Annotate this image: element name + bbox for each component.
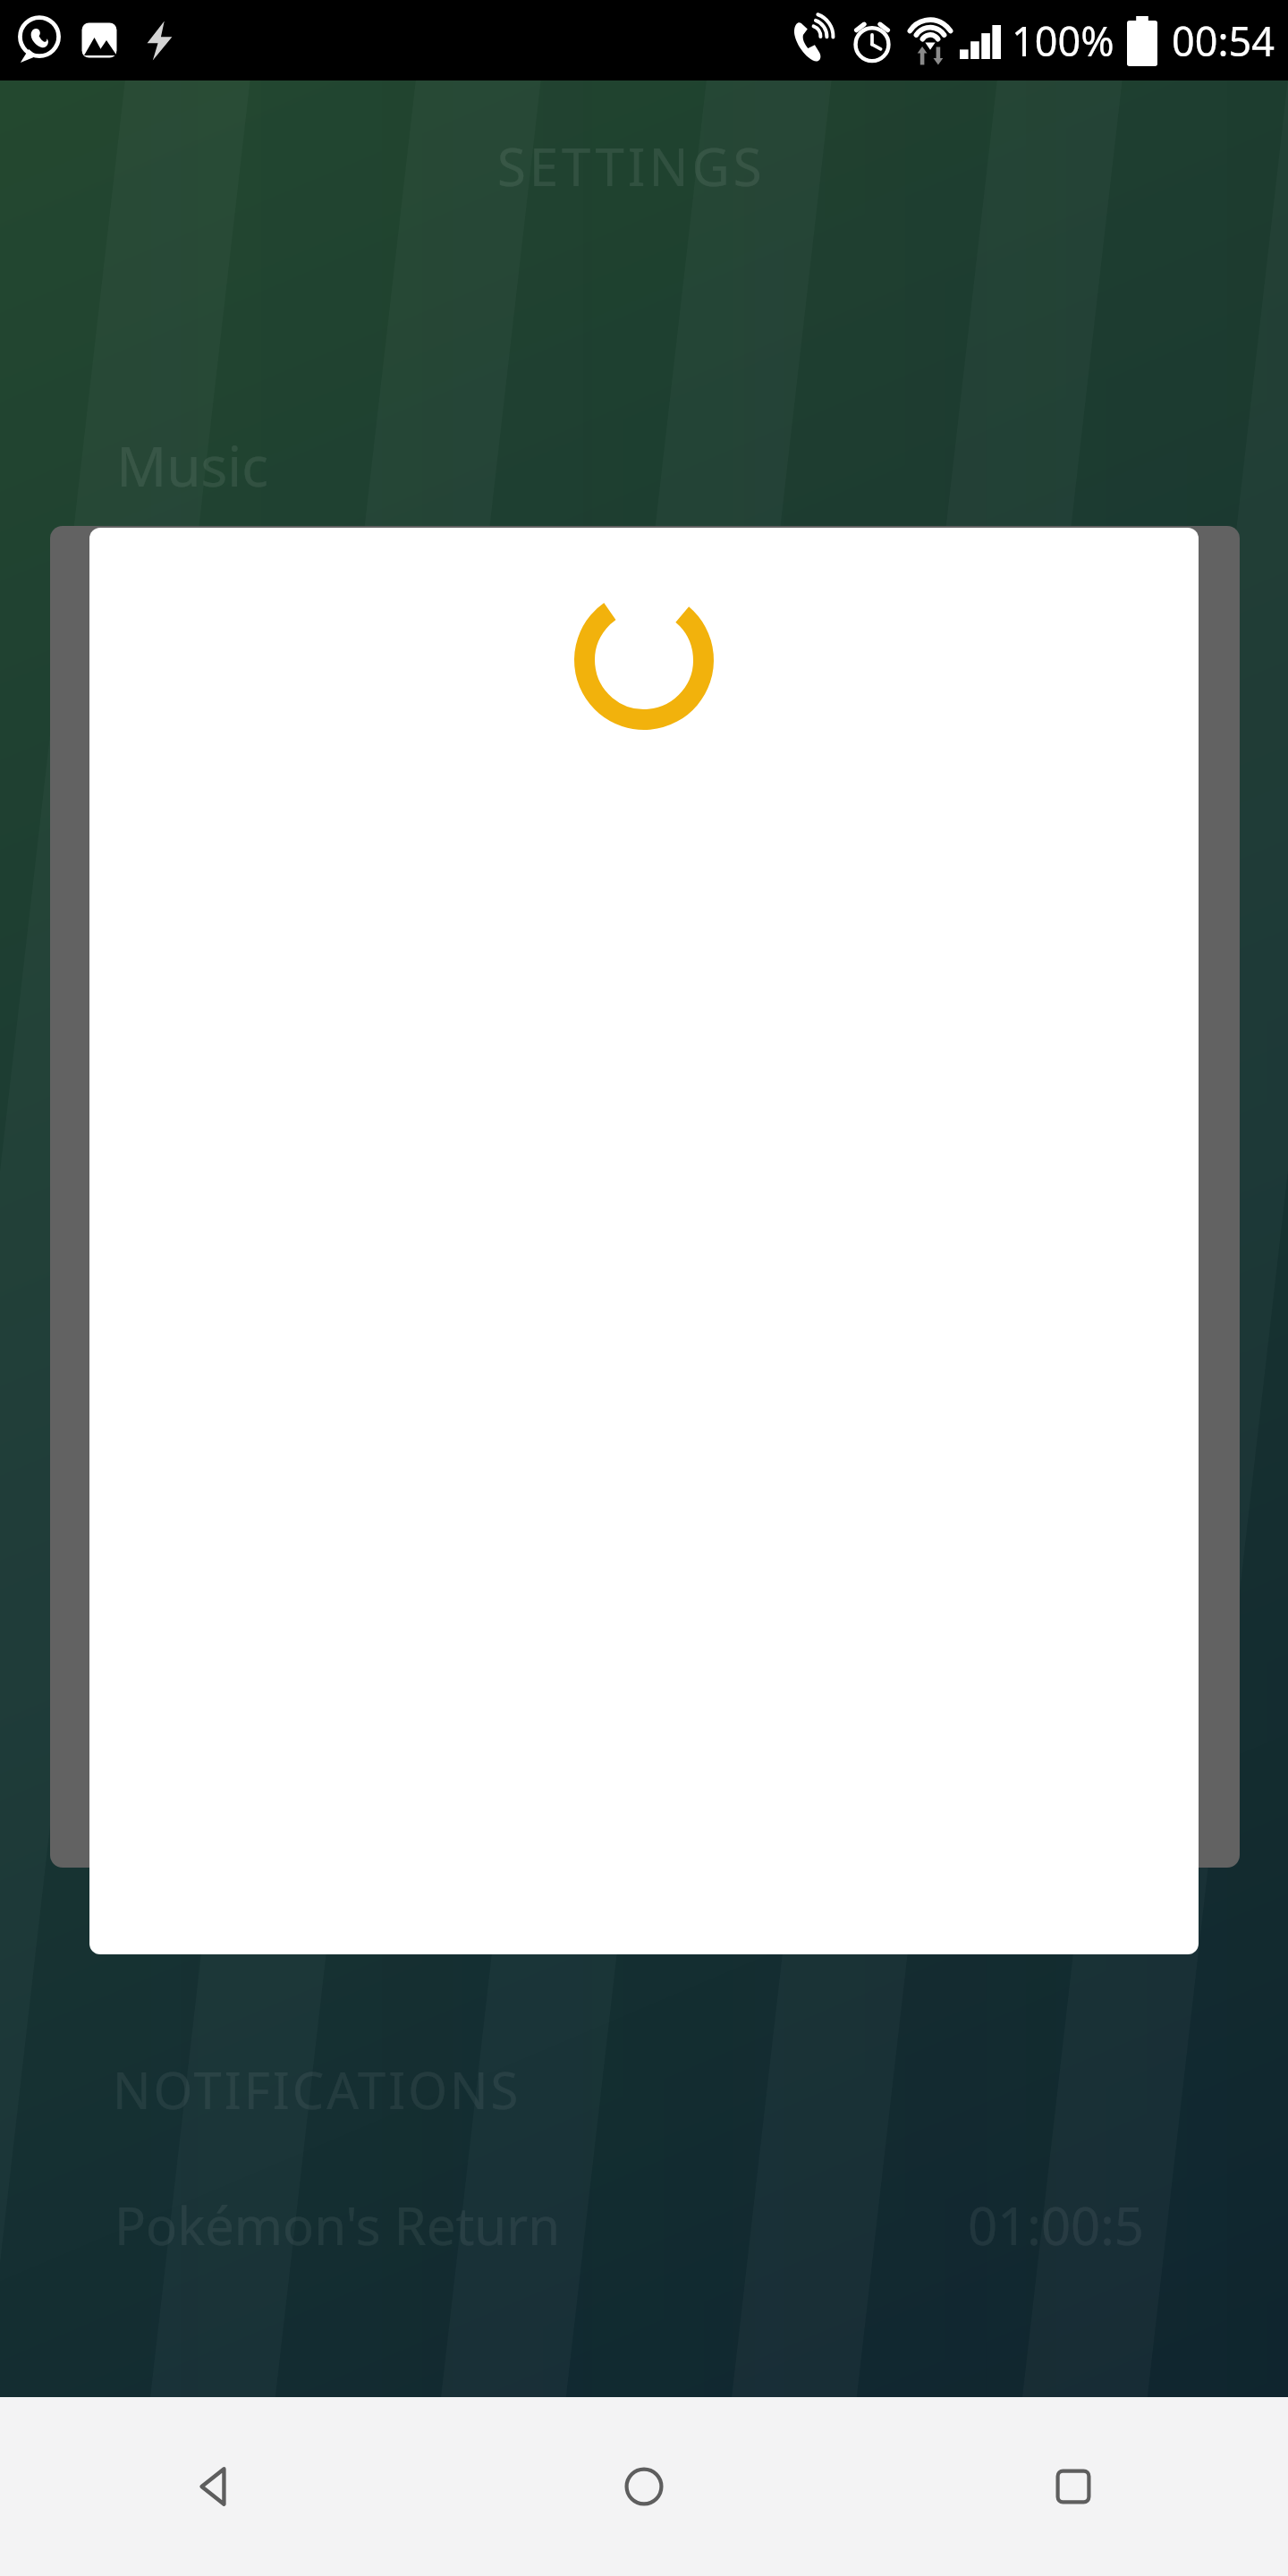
other: Loading [572, 589, 716, 732]
staticText: 01:00:5 [968, 2190, 1144, 2260]
staticText: Pokémon's Return [114, 2190, 560, 2260]
button[interactable]: Back [0, 2397, 429, 2576]
staticText: 00:54 [1172, 13, 1275, 68]
staticText: 100% [1012, 13, 1114, 68]
button[interactable]: Home [429, 2397, 859, 2576]
staticText: NOTIFICATIONS [113, 2055, 521, 2123]
button[interactable]: Recent apps [859, 2397, 1288, 2576]
staticText: SETTINGS [497, 131, 766, 201]
button[interactable]: Loading [89, 528, 1199, 1954]
staticText: Music [116, 428, 269, 503]
